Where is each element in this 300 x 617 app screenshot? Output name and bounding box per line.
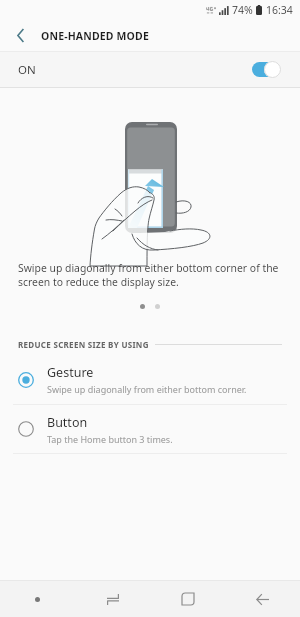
staticText: 16:34 — [266, 3, 293, 17]
staticText: ON — [18, 62, 36, 78]
staticText: Tap the Home button 3 times. — [47, 433, 173, 445]
staticText: REDUCE SCREEN SIZE BY USING — [18, 339, 149, 350]
staticText: 74% — [232, 3, 253, 17]
staticText: ONE-HANDED MODE — [41, 29, 149, 43]
button[interactable]: ON — [0, 52, 300, 87]
button[interactable]: Gesture — [0, 355, 300, 404]
staticText: Gesture — [47, 364, 94, 381]
staticText: Button — [47, 414, 88, 431]
button[interactable]: Recent apps — [75, 581, 150, 617]
button[interactable]: Navigate up — [0, 20, 41, 51]
button[interactable]: Back — [225, 581, 300, 617]
staticText: Swipe up diagonally from either bottom c… — [47, 383, 247, 395]
staticText: Swipe up diagonally from either bottom c… — [18, 261, 282, 289]
button[interactable]: Button — [0, 405, 300, 453]
button[interactable]: Home — [150, 581, 225, 617]
